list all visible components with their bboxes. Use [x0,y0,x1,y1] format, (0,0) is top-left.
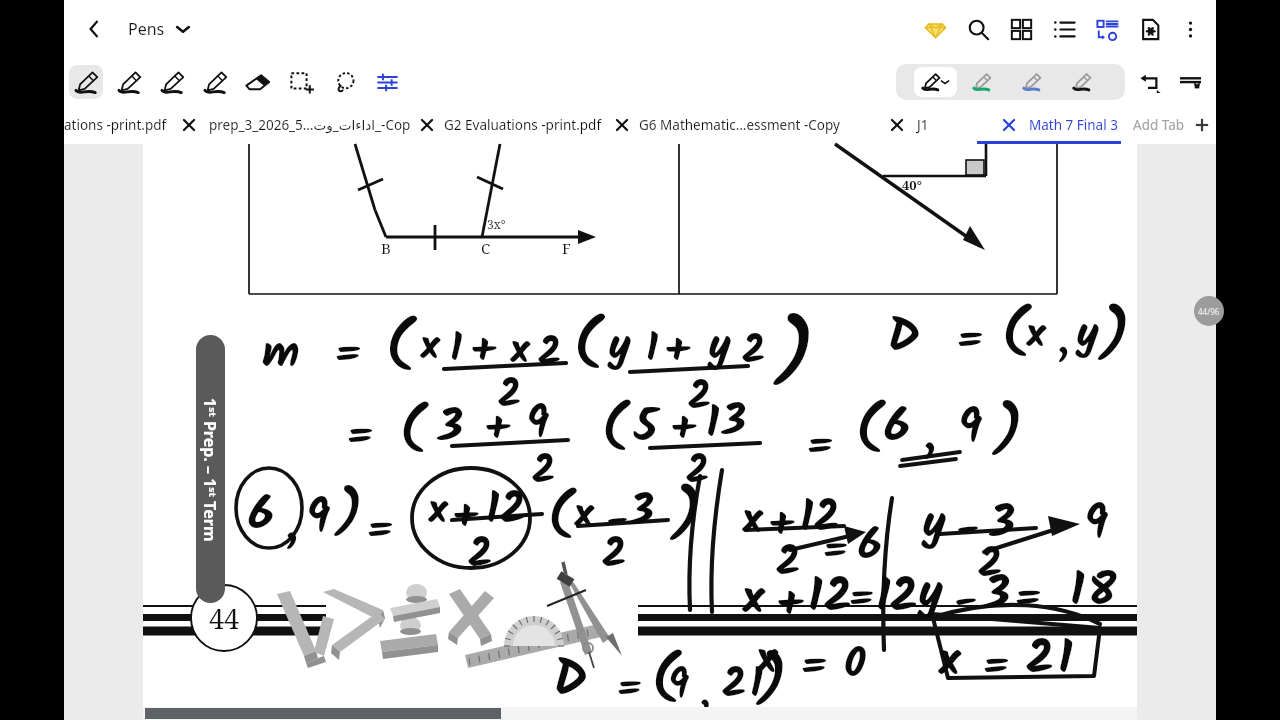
staticText: 6 [884,390,911,467]
staticText: x [428,478,448,545]
button[interactable] [879,106,977,144]
staticText: 6 [248,478,275,555]
staticText: y [708,312,731,382]
button[interactable]: Back [76,11,112,47]
staticText: , [286,490,299,563]
button[interactable]: Close tab prep_3_2026_5…اداءات_وت_-Cop [176,112,202,138]
button[interactable]: Pen colour [1007,67,1057,97]
button[interactable]: Close tab G6 Mathematic…essment -Copy [609,112,635,138]
button[interactable]: Stroke settings [370,65,404,99]
staticText: 2 [500,476,526,546]
button[interactable]: Close tab G2 Evaluations -print.pdf [414,112,440,138]
staticText: 2 [722,652,747,719]
button[interactable] [604,106,879,144]
staticText: , [1058,308,1070,375]
staticText: = [982,634,1011,701]
staticText: 1 [646,318,659,382]
staticText: 1 [450,318,463,382]
staticText: 44/96 [1198,306,1220,317]
button[interactable]: Pen colour [957,67,1007,97]
staticText: = [616,658,643,720]
staticText: Pens [128,18,165,40]
button[interactable]: Page number [1194,296,1224,326]
staticText: = [848,568,875,632]
button[interactable] [409,106,604,144]
staticText: 9 [526,388,550,461]
staticText: 9 [306,480,331,557]
staticText: 2 [978,532,1003,599]
staticText: ations -print.pdf [64,116,167,134]
staticText: + [470,318,496,385]
staticText: y [608,312,631,382]
staticText: 1 [1070,554,1085,631]
staticText: 1 [1058,622,1073,699]
button[interactable]: Pen colour [1057,67,1107,97]
staticText: 2 [498,364,522,428]
button[interactable]: Pen tool [69,65,103,99]
staticText: ( [400,394,424,474]
staticText: G2 Evaluations -print.pdf [444,116,602,134]
staticText: 8 [1088,554,1117,631]
button[interactable]: Pen tool [198,65,232,99]
button[interactable]: More options [1172,9,1208,49]
button[interactable]: Close tab J1 [884,112,910,138]
staticText: - [956,496,980,566]
staticText: D [888,300,920,377]
button[interactable] [171,106,409,144]
staticText: ) [758,642,787,720]
staticText: 3 [722,388,747,458]
staticText: 9 [668,652,690,719]
button[interactable]: Search [957,9,1000,49]
staticText: = [822,520,849,584]
button[interactable]: Lock toolbar [1170,62,1210,102]
staticText: 0 [844,632,866,699]
button[interactable]: Current pen [914,67,957,97]
staticText: x [742,562,765,639]
button[interactable] [977,106,1121,144]
button[interactable]: Eraser [241,65,275,99]
button[interactable]: Undo [1130,62,1170,102]
button[interactable]: Outline [1086,9,1129,49]
button[interactable]: Rectangle select [284,65,318,99]
button[interactable]: Page settings [1129,9,1172,49]
button[interactable]: Add Tab [1133,116,1209,134]
staticText: , [924,400,937,473]
staticText: = [1014,566,1043,633]
button[interactable]: Pen tool [155,65,189,99]
button[interactable]: Pen tool [112,65,146,99]
button[interactable]: Grid view [1000,9,1043,49]
staticText: 9 [1084,486,1109,563]
button[interactable]: Pens [124,12,194,46]
staticText: 2 [890,560,918,637]
button[interactable] [64,106,171,144]
staticText: 2 [824,560,852,637]
staticText: ( [602,392,626,472]
staticText: , [700,662,711,720]
staticText: = [800,634,829,701]
staticText: 2 [688,366,712,430]
staticText: C [481,238,491,258]
button[interactable]: List view [1043,9,1086,49]
button[interactable]: Close tab Math 7 Final 3 [996,112,1022,138]
button[interactable]: Premium [914,9,957,49]
staticText: 2 [538,322,562,386]
staticText: y [1076,300,1099,370]
staticText: m [262,318,300,391]
staticText: y [918,556,943,633]
staticText: 2 [776,530,801,597]
staticText: ) [1100,294,1130,383]
staticText: 1ˢᵗ Prep. – 1ˢᵗ Term [199,398,221,542]
staticText: 9 [958,390,983,467]
staticText: + [484,396,510,463]
staticText: x [938,624,961,701]
staticText: G6 Mathematic…essment -Copy [639,116,840,134]
staticText: x [756,624,778,697]
staticText: 3 [984,558,1011,635]
staticText: 5 [634,392,658,465]
staticText: ) [994,392,1023,478]
button[interactable]: Lasso select [327,65,361,99]
staticText: + [664,318,690,385]
staticText: + [452,484,478,551]
staticText: + [768,492,794,559]
staticText: ) [336,478,363,558]
